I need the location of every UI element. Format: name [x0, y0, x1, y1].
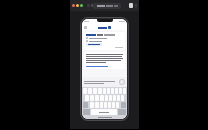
button[interactable]	[104, 102, 107, 108]
button[interactable]	[83, 88, 87, 94]
button[interactable]	[111, 88, 114, 94]
button[interactable]	[117, 95, 120, 101]
button[interactable]	[86, 43, 102, 46]
button[interactable]: Close	[72, 4, 75, 7]
button[interactable]	[100, 102, 103, 108]
button[interactable]	[115, 88, 118, 94]
button[interactable]	[100, 95, 104, 101]
button[interactable]	[98, 88, 102, 94]
button[interactable]	[90, 102, 94, 108]
button[interactable]	[85, 95, 89, 101]
button[interactable]: New tab	[91, 4, 94, 7]
button[interactable]: Zoom	[80, 4, 83, 7]
button[interactable]	[95, 95, 99, 101]
button[interactable]	[103, 88, 106, 94]
button[interactable]	[105, 95, 108, 101]
button[interactable]	[108, 102, 111, 108]
button[interactable]	[86, 37, 107, 39]
button[interactable]	[121, 95, 124, 101]
button[interactable]	[84, 52, 125, 69]
button[interactable]	[113, 95, 116, 101]
button[interactable]: Send	[119, 79, 125, 85]
button[interactable]	[116, 102, 119, 108]
button[interactable]: Space	[91, 109, 117, 115]
button[interactable]	[112, 102, 115, 108]
button[interactable]	[93, 3, 121, 9]
button[interactable]	[109, 95, 112, 101]
button[interactable]: Devices	[129, 3, 133, 8]
button[interactable]	[90, 95, 94, 101]
button[interactable]	[86, 40, 102, 42]
button[interactable]: Minimize	[76, 4, 79, 7]
button[interactable]: More options	[135, 3, 137, 8]
button[interactable]	[119, 88, 122, 94]
button[interactable]	[84, 32, 125, 50]
button[interactable]	[123, 88, 126, 94]
button[interactable]	[95, 102, 99, 108]
button[interactable]	[93, 88, 97, 94]
button[interactable]	[88, 88, 92, 94]
button[interactable]	[107, 88, 110, 94]
